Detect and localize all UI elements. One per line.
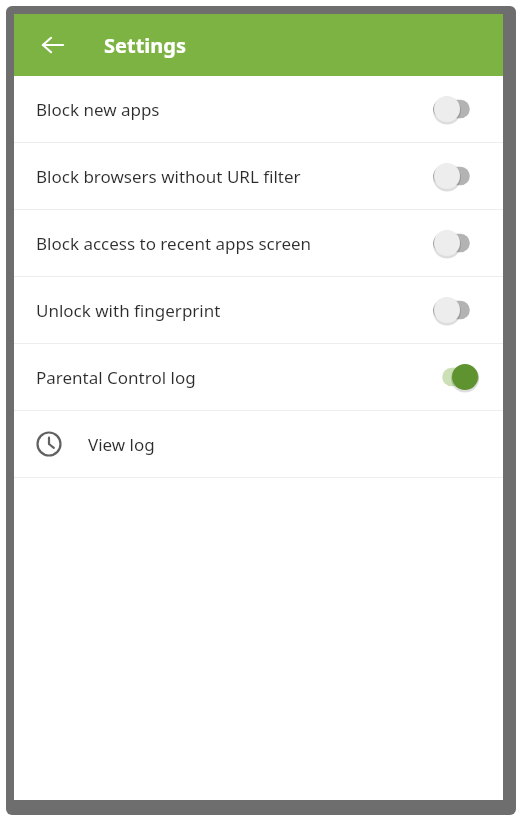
staticText: Unlock with fingerprint — [36, 299, 221, 322]
button[interactable]: Back — [32, 24, 74, 66]
staticText: Block new apps — [36, 98, 160, 121]
button[interactable]: Block access to recent apps screen — [14, 210, 503, 277]
button[interactable]: View log — [14, 411, 503, 478]
staticText: View log — [88, 433, 155, 456]
button[interactable]: Unlock with fingerprint — [14, 277, 503, 344]
staticText: Parental Control log — [36, 366, 196, 389]
staticText: Block browsers without URL filter — [36, 165, 301, 188]
button[interactable]: Parental Control log — [14, 344, 503, 411]
button[interactable]: Block new apps — [14, 76, 503, 143]
staticText: Block access to recent apps screen — [36, 232, 312, 255]
button[interactable]: Block browsers without URL filter — [14, 143, 503, 210]
staticText: Settings — [104, 32, 186, 59]
